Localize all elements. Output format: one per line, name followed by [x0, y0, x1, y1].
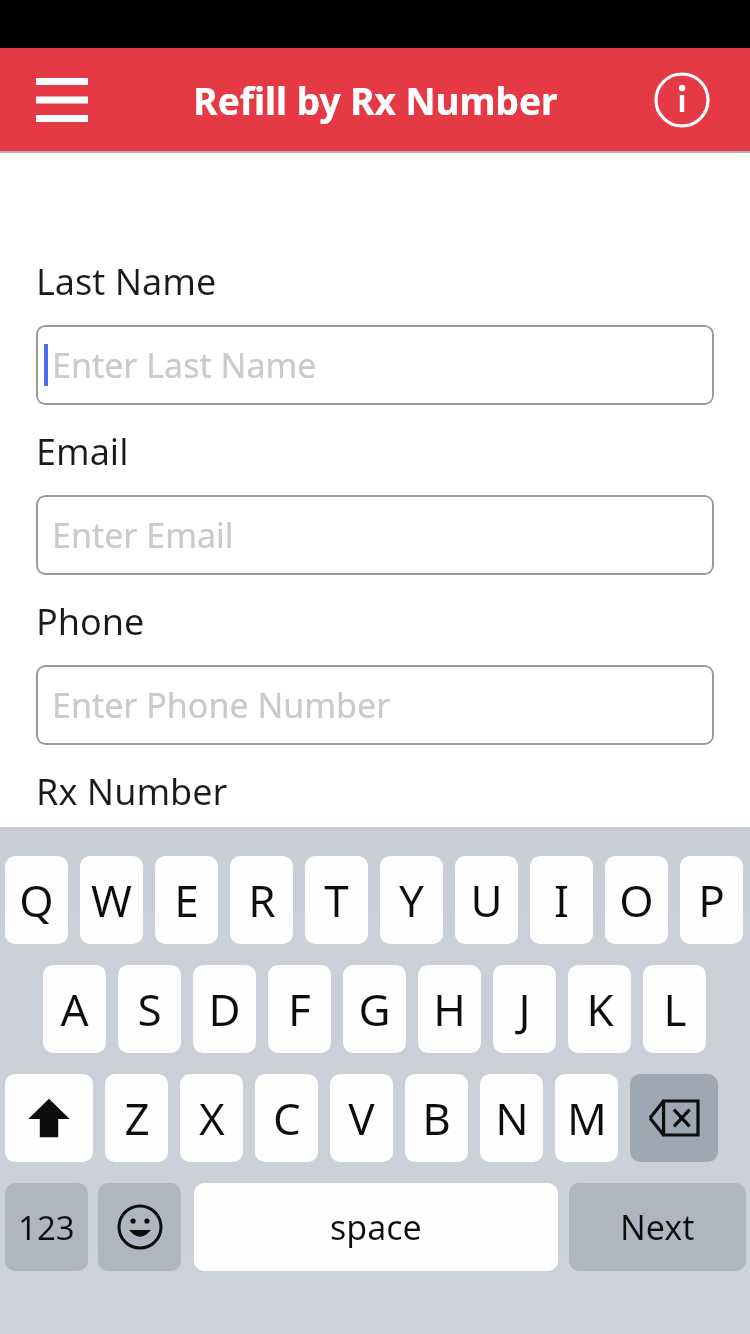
button[interactable]: L — [643, 965, 706, 1053]
button[interactable]: O — [605, 856, 668, 944]
staticText: Phone — [36, 597, 145, 646]
staticText: A — [60, 979, 89, 1039]
staticText: Last Name — [36, 257, 217, 306]
staticText: W — [91, 870, 132, 930]
button[interactable]: H — [418, 965, 481, 1053]
button[interactable]: J — [493, 965, 556, 1053]
staticText: Enter Last Name — [52, 342, 317, 388]
staticText: G — [358, 979, 391, 1039]
button[interactable]: R — [230, 856, 293, 944]
button[interactable]: Y — [380, 856, 443, 944]
button[interactable]: K — [568, 965, 631, 1053]
staticText: B — [422, 1088, 451, 1148]
button[interactable]: B — [405, 1074, 468, 1162]
staticText: V — [348, 1088, 375, 1148]
staticText: T — [324, 870, 349, 930]
staticText: space — [330, 1204, 422, 1250]
staticText: I — [554, 870, 569, 930]
staticText: Q — [19, 870, 54, 930]
staticText: F — [288, 979, 311, 1039]
staticText: Enter Phone Number — [52, 682, 391, 728]
button[interactable]: S — [118, 965, 181, 1053]
button[interactable]: Emoji keyboard — [98, 1183, 181, 1271]
button[interactable]: N — [480, 1074, 543, 1162]
staticText: X — [199, 1088, 225, 1148]
button[interactable]: 123 — [5, 1183, 88, 1271]
staticText: E — [174, 870, 199, 930]
staticText: Rx Number — [36, 767, 228, 816]
button[interactable]: T — [305, 856, 368, 944]
button[interactable]: D — [193, 965, 256, 1053]
staticText: M — [567, 1088, 607, 1148]
staticText: P — [698, 870, 725, 930]
button[interactable]: Information — [650, 68, 714, 132]
button[interactable]: space — [194, 1183, 558, 1271]
button[interactable]: V — [330, 1074, 393, 1162]
button[interactable]: Shift — [5, 1074, 93, 1162]
staticText: R — [248, 870, 276, 930]
staticText: Email — [36, 427, 129, 476]
button[interactable]: I — [530, 856, 593, 944]
staticText: Y — [399, 870, 424, 930]
button[interactable]: P — [680, 856, 743, 944]
button[interactable]: F — [268, 965, 331, 1053]
staticText: Z — [124, 1088, 150, 1148]
button[interactable]: Enter Last Name — [36, 325, 714, 405]
staticText: 123 — [18, 1205, 75, 1250]
staticText: N — [495, 1088, 529, 1148]
button[interactable]: Next — [569, 1183, 746, 1271]
staticText: U — [470, 870, 503, 930]
button[interactable]: Z — [105, 1074, 168, 1162]
button[interactable]: E — [155, 856, 218, 944]
button[interactable]: Q — [5, 856, 68, 944]
button[interactable]: Open navigation menu — [22, 65, 102, 135]
staticText: Refill by Rx Number — [193, 75, 558, 125]
staticText: D — [208, 979, 241, 1039]
staticText: L — [663, 979, 687, 1039]
staticText: J — [518, 979, 531, 1039]
button[interactable]: X — [180, 1074, 243, 1162]
button[interactable]: W — [80, 856, 143, 944]
button[interactable]: Backspace — [630, 1074, 718, 1162]
button[interactable]: Enter Email — [36, 495, 714, 575]
staticText: K — [586, 979, 614, 1039]
staticText: O — [619, 870, 654, 930]
button[interactable]: C — [255, 1074, 318, 1162]
staticText: C — [273, 1088, 301, 1148]
staticText: Next — [620, 1204, 695, 1250]
staticText: H — [433, 979, 466, 1039]
button[interactable]: Enter Phone Number — [36, 665, 714, 745]
button[interactable]: G — [343, 965, 406, 1053]
button[interactable]: U — [455, 856, 518, 944]
staticText: S — [137, 979, 162, 1039]
button[interactable]: A — [43, 965, 106, 1053]
staticText: Enter Email — [52, 512, 234, 558]
button[interactable]: M — [555, 1074, 618, 1162]
